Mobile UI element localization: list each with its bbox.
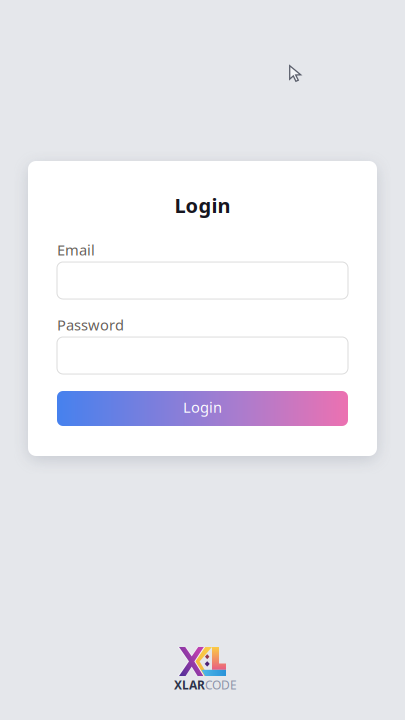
button[interactable]: Password: [57, 337, 348, 374]
staticText: Password: [57, 315, 124, 334]
staticText: CODE: [205, 677, 237, 693]
staticText: Login: [174, 192, 230, 219]
button[interactable]: Email: [57, 262, 348, 299]
staticText: XLAR: [174, 677, 205, 693]
staticText: Login: [183, 397, 222, 417]
button[interactable]: Login: [57, 391, 348, 426]
staticText: Email: [57, 240, 95, 259]
